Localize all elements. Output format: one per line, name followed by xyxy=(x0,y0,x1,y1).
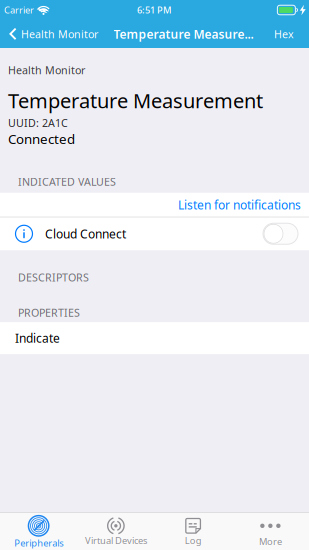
staticText: Virtual Devices xyxy=(85,534,147,547)
staticText: More xyxy=(259,535,282,548)
staticText: Indicate xyxy=(15,330,60,346)
button[interactable]: More xyxy=(232,513,309,550)
staticText: Peripherals xyxy=(14,537,63,549)
staticText: Log xyxy=(185,534,202,547)
staticText: INDICATED VALUES xyxy=(18,175,116,189)
button[interactable]: Virtual Devices xyxy=(77,513,154,550)
staticText: Hex xyxy=(274,27,294,41)
staticText: UUID: 2A1C xyxy=(8,116,68,130)
button[interactable]: Hex xyxy=(266,20,309,48)
staticText: DESCRIPTORS xyxy=(18,270,89,284)
button[interactable]: Peripherals xyxy=(0,513,77,550)
button[interactable]: Log xyxy=(154,513,232,550)
staticText: Health Monitor xyxy=(21,27,98,41)
button[interactable]: Health Monitor xyxy=(0,20,101,48)
staticText: Health Monitor xyxy=(8,63,85,77)
staticText: Temperature Measurement xyxy=(8,87,263,114)
staticText: Cloud Connect xyxy=(45,226,126,242)
staticText: Temperature Measure... xyxy=(113,26,253,42)
staticText: Listen for notifications xyxy=(178,197,301,213)
staticText: Connected xyxy=(8,130,75,148)
staticText: Carrier xyxy=(4,4,34,16)
staticText: PROPERTIES xyxy=(18,305,80,320)
staticText: 6:51 PM xyxy=(137,4,172,16)
button[interactable]: Listen for notifications xyxy=(0,193,309,217)
